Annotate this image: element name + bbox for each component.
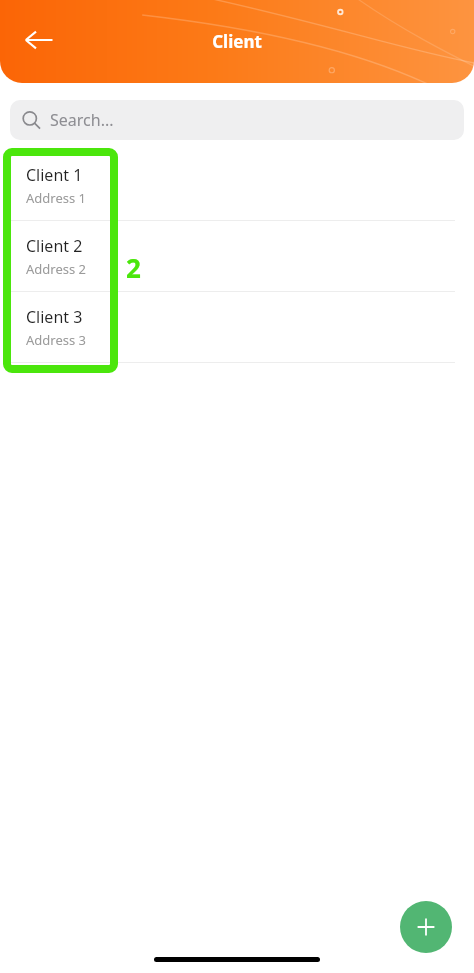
button[interactable]: Search... [10, 100, 464, 140]
button[interactable]: Add client [400, 901, 452, 953]
button[interactable]: Client 2 [0, 221, 474, 291]
staticText: Client 1 [26, 164, 83, 186]
button[interactable]: Client 1 [0, 150, 474, 220]
staticText: Address 3 [26, 331, 87, 349]
button[interactable]: Back [12, 13, 66, 67]
staticText: Client [212, 30, 262, 53]
button[interactable]: Client 3 [0, 292, 474, 362]
staticText: Address 2 [26, 260, 87, 278]
staticText: Client 2 [26, 235, 83, 257]
staticText: Search... [50, 109, 114, 131]
staticText: Client 3 [26, 306, 83, 328]
staticText: 2 [126, 250, 141, 285]
staticText: Address 1 [26, 189, 87, 207]
